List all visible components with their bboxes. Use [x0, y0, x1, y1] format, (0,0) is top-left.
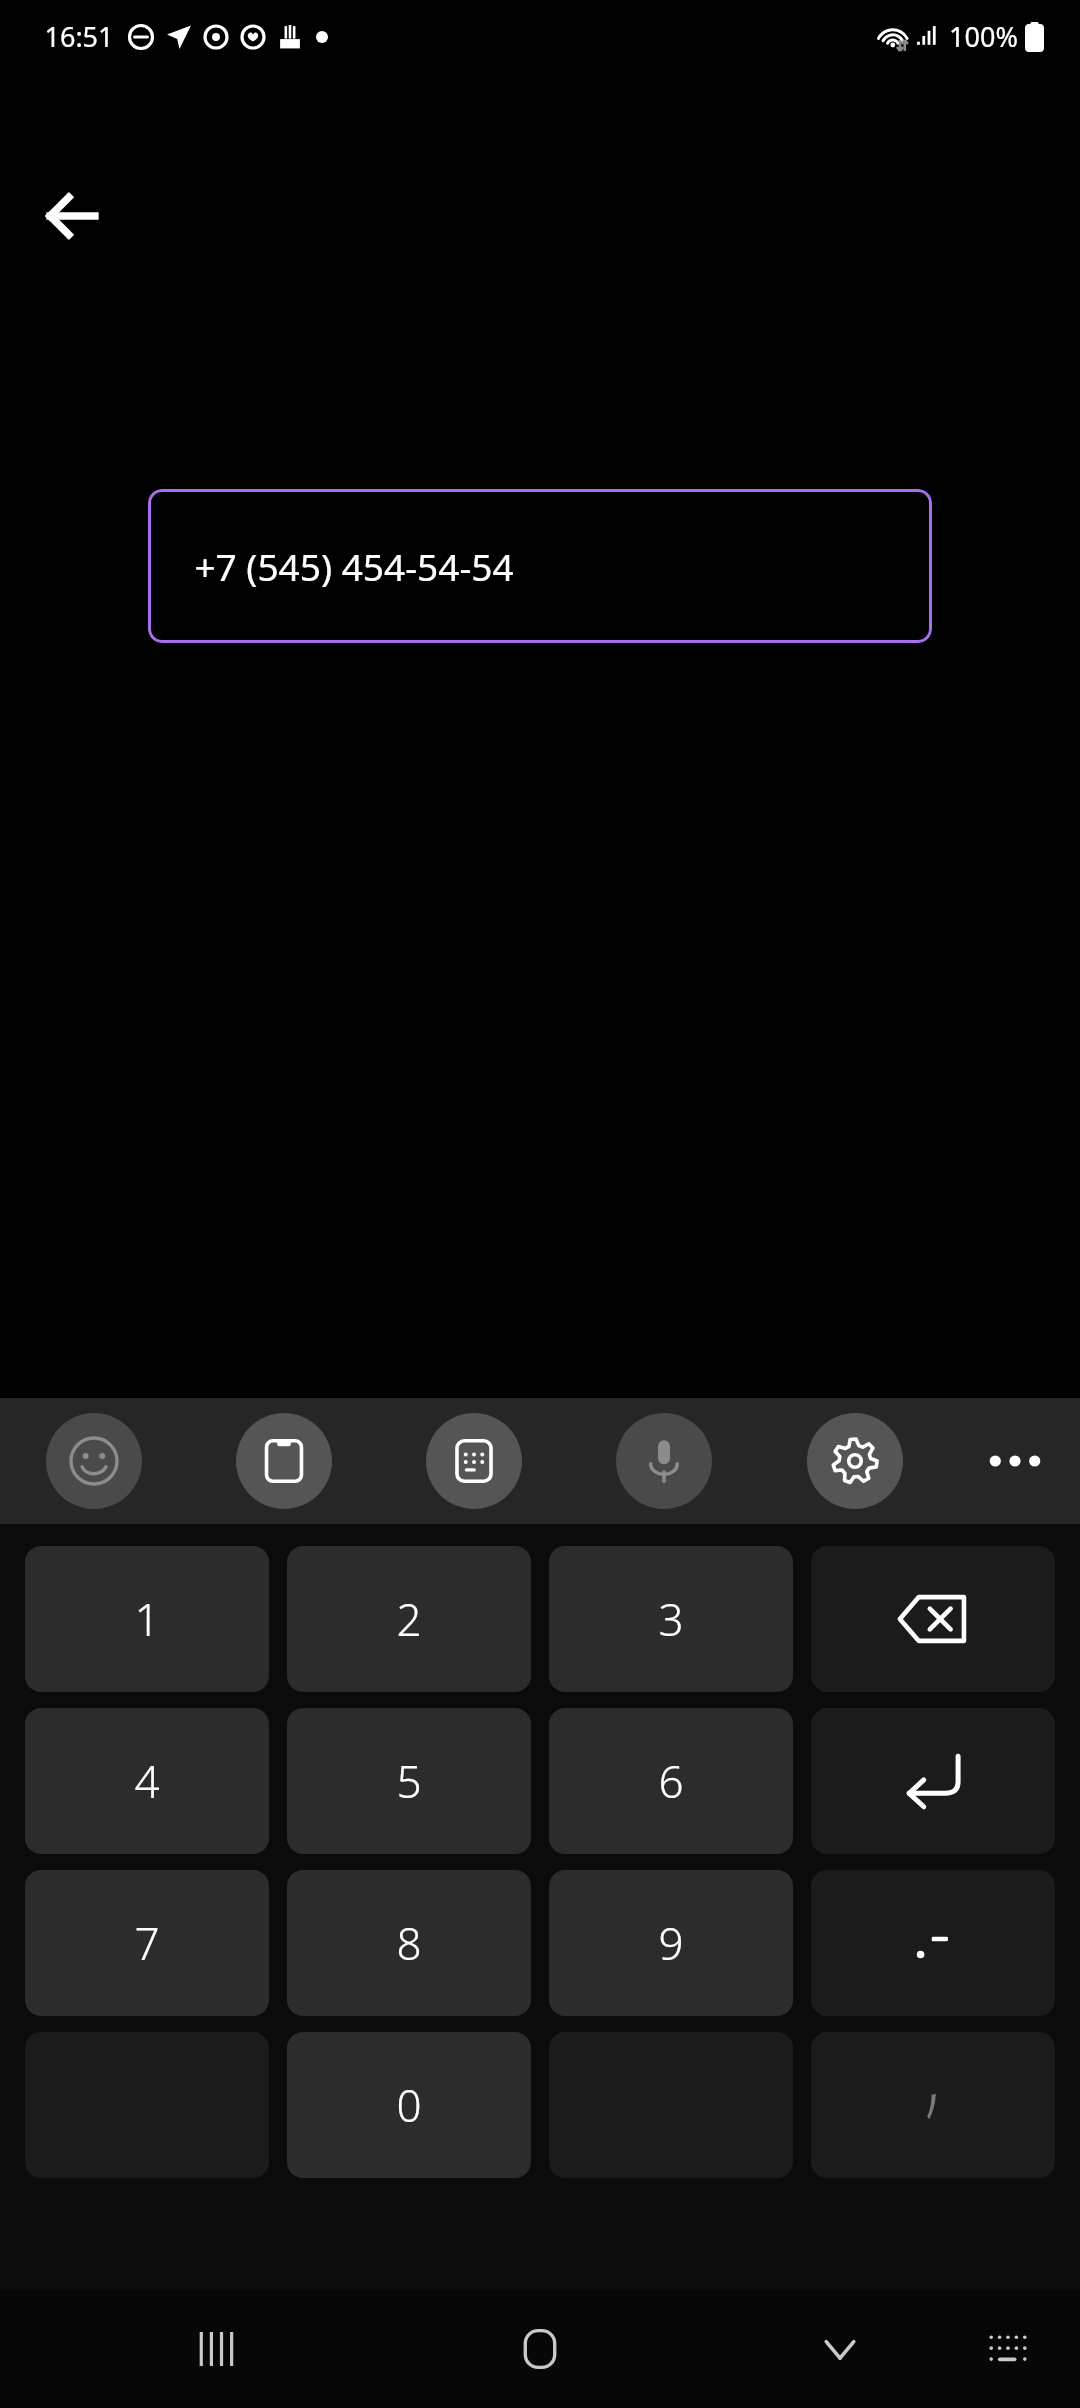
- button[interactable]: Hide keyboard: [800, 2309, 880, 2389]
- staticText: 9: [658, 1913, 684, 1973]
- staticText: 2: [396, 1589, 422, 1649]
- staticText: 7: [134, 1913, 160, 1973]
- button[interactable]: Period dash: [811, 1870, 1055, 2016]
- button[interactable]: Settings: [807, 1413, 903, 1509]
- button[interactable]: Change keyboard: [968, 2309, 1048, 2389]
- button[interactable]: More options: [967, 1413, 1063, 1509]
- staticText: 100%: [949, 18, 1018, 55]
- button[interactable]: 7: [25, 1870, 269, 2016]
- button[interactable]: Keyboard mode: [426, 1413, 522, 1509]
- button[interactable]: +7 (545) 454-54-54: [148, 489, 932, 643]
- staticText: 5: [396, 1751, 422, 1811]
- button[interactable]: 3: [549, 1546, 793, 1692]
- button[interactable]: Enter: [811, 1708, 1055, 1854]
- button[interactable]: 8: [287, 1870, 531, 2016]
- button[interactable]: 0: [287, 2032, 531, 2178]
- button[interactable]: Backspace: [811, 1546, 1055, 1692]
- button[interactable]: 5: [287, 1708, 531, 1854]
- staticText: +7 (545) 454-54-54: [194, 541, 514, 591]
- button[interactable]: Voice input: [616, 1413, 712, 1509]
- button[interactable]: 4: [25, 1708, 269, 1854]
- button[interactable]: Back: [20, 164, 124, 268]
- staticText: 4: [134, 1751, 160, 1811]
- staticText: 1: [134, 1589, 160, 1649]
- button[interactable]: Clipboard: [236, 1413, 332, 1509]
- staticText: 6: [658, 1751, 684, 1811]
- button[interactable]: 1: [25, 1546, 269, 1692]
- staticText: 0: [396, 2075, 422, 2135]
- button[interactable]: 2: [287, 1546, 531, 1692]
- button[interactable]: Recent apps: [176, 2309, 256, 2389]
- button[interactable]: Comma: [811, 2032, 1055, 2178]
- staticText: 16:51: [44, 18, 114, 55]
- staticText: 8: [396, 1913, 422, 1973]
- button[interactable]: Emoji: [46, 1413, 142, 1509]
- staticText: 3: [658, 1589, 684, 1649]
- button[interactable]: 6: [549, 1708, 793, 1854]
- button[interactable]: 9: [549, 1870, 793, 2016]
- button[interactable]: Home: [500, 2309, 580, 2389]
